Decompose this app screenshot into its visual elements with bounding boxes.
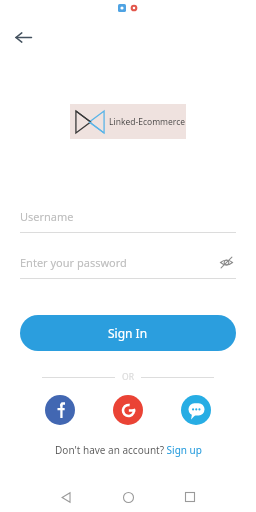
button[interactable]: Enter your password — [20, 251, 236, 279]
staticText: Don't have an account? Sign up — [55, 443, 202, 457]
staticText: Sign In — [108, 325, 148, 341]
staticText: Enter your password — [20, 255, 127, 270]
button[interactable]: Back — [10, 24, 36, 50]
button[interactable]: Don't have an account? Sign up — [55, 443, 202, 457]
button[interactable]: Sign in with Facebook — [45, 395, 75, 425]
button[interactable]: Show password — [216, 252, 236, 272]
button[interactable]: Sign in with SMS — [181, 395, 211, 425]
staticText: OR — [122, 371, 134, 383]
staticText: Username — [20, 209, 74, 224]
button[interactable]: Back — [49, 482, 83, 512]
button[interactable]: Sign in with Google — [113, 395, 143, 425]
button[interactable]: Recent apps — [173, 482, 207, 512]
button[interactable]: Sign In — [20, 315, 236, 351]
button[interactable]: Username — [20, 205, 236, 233]
staticText: Linked-Ecommerce — [109, 116, 186, 128]
button[interactable]: Home — [111, 482, 145, 512]
